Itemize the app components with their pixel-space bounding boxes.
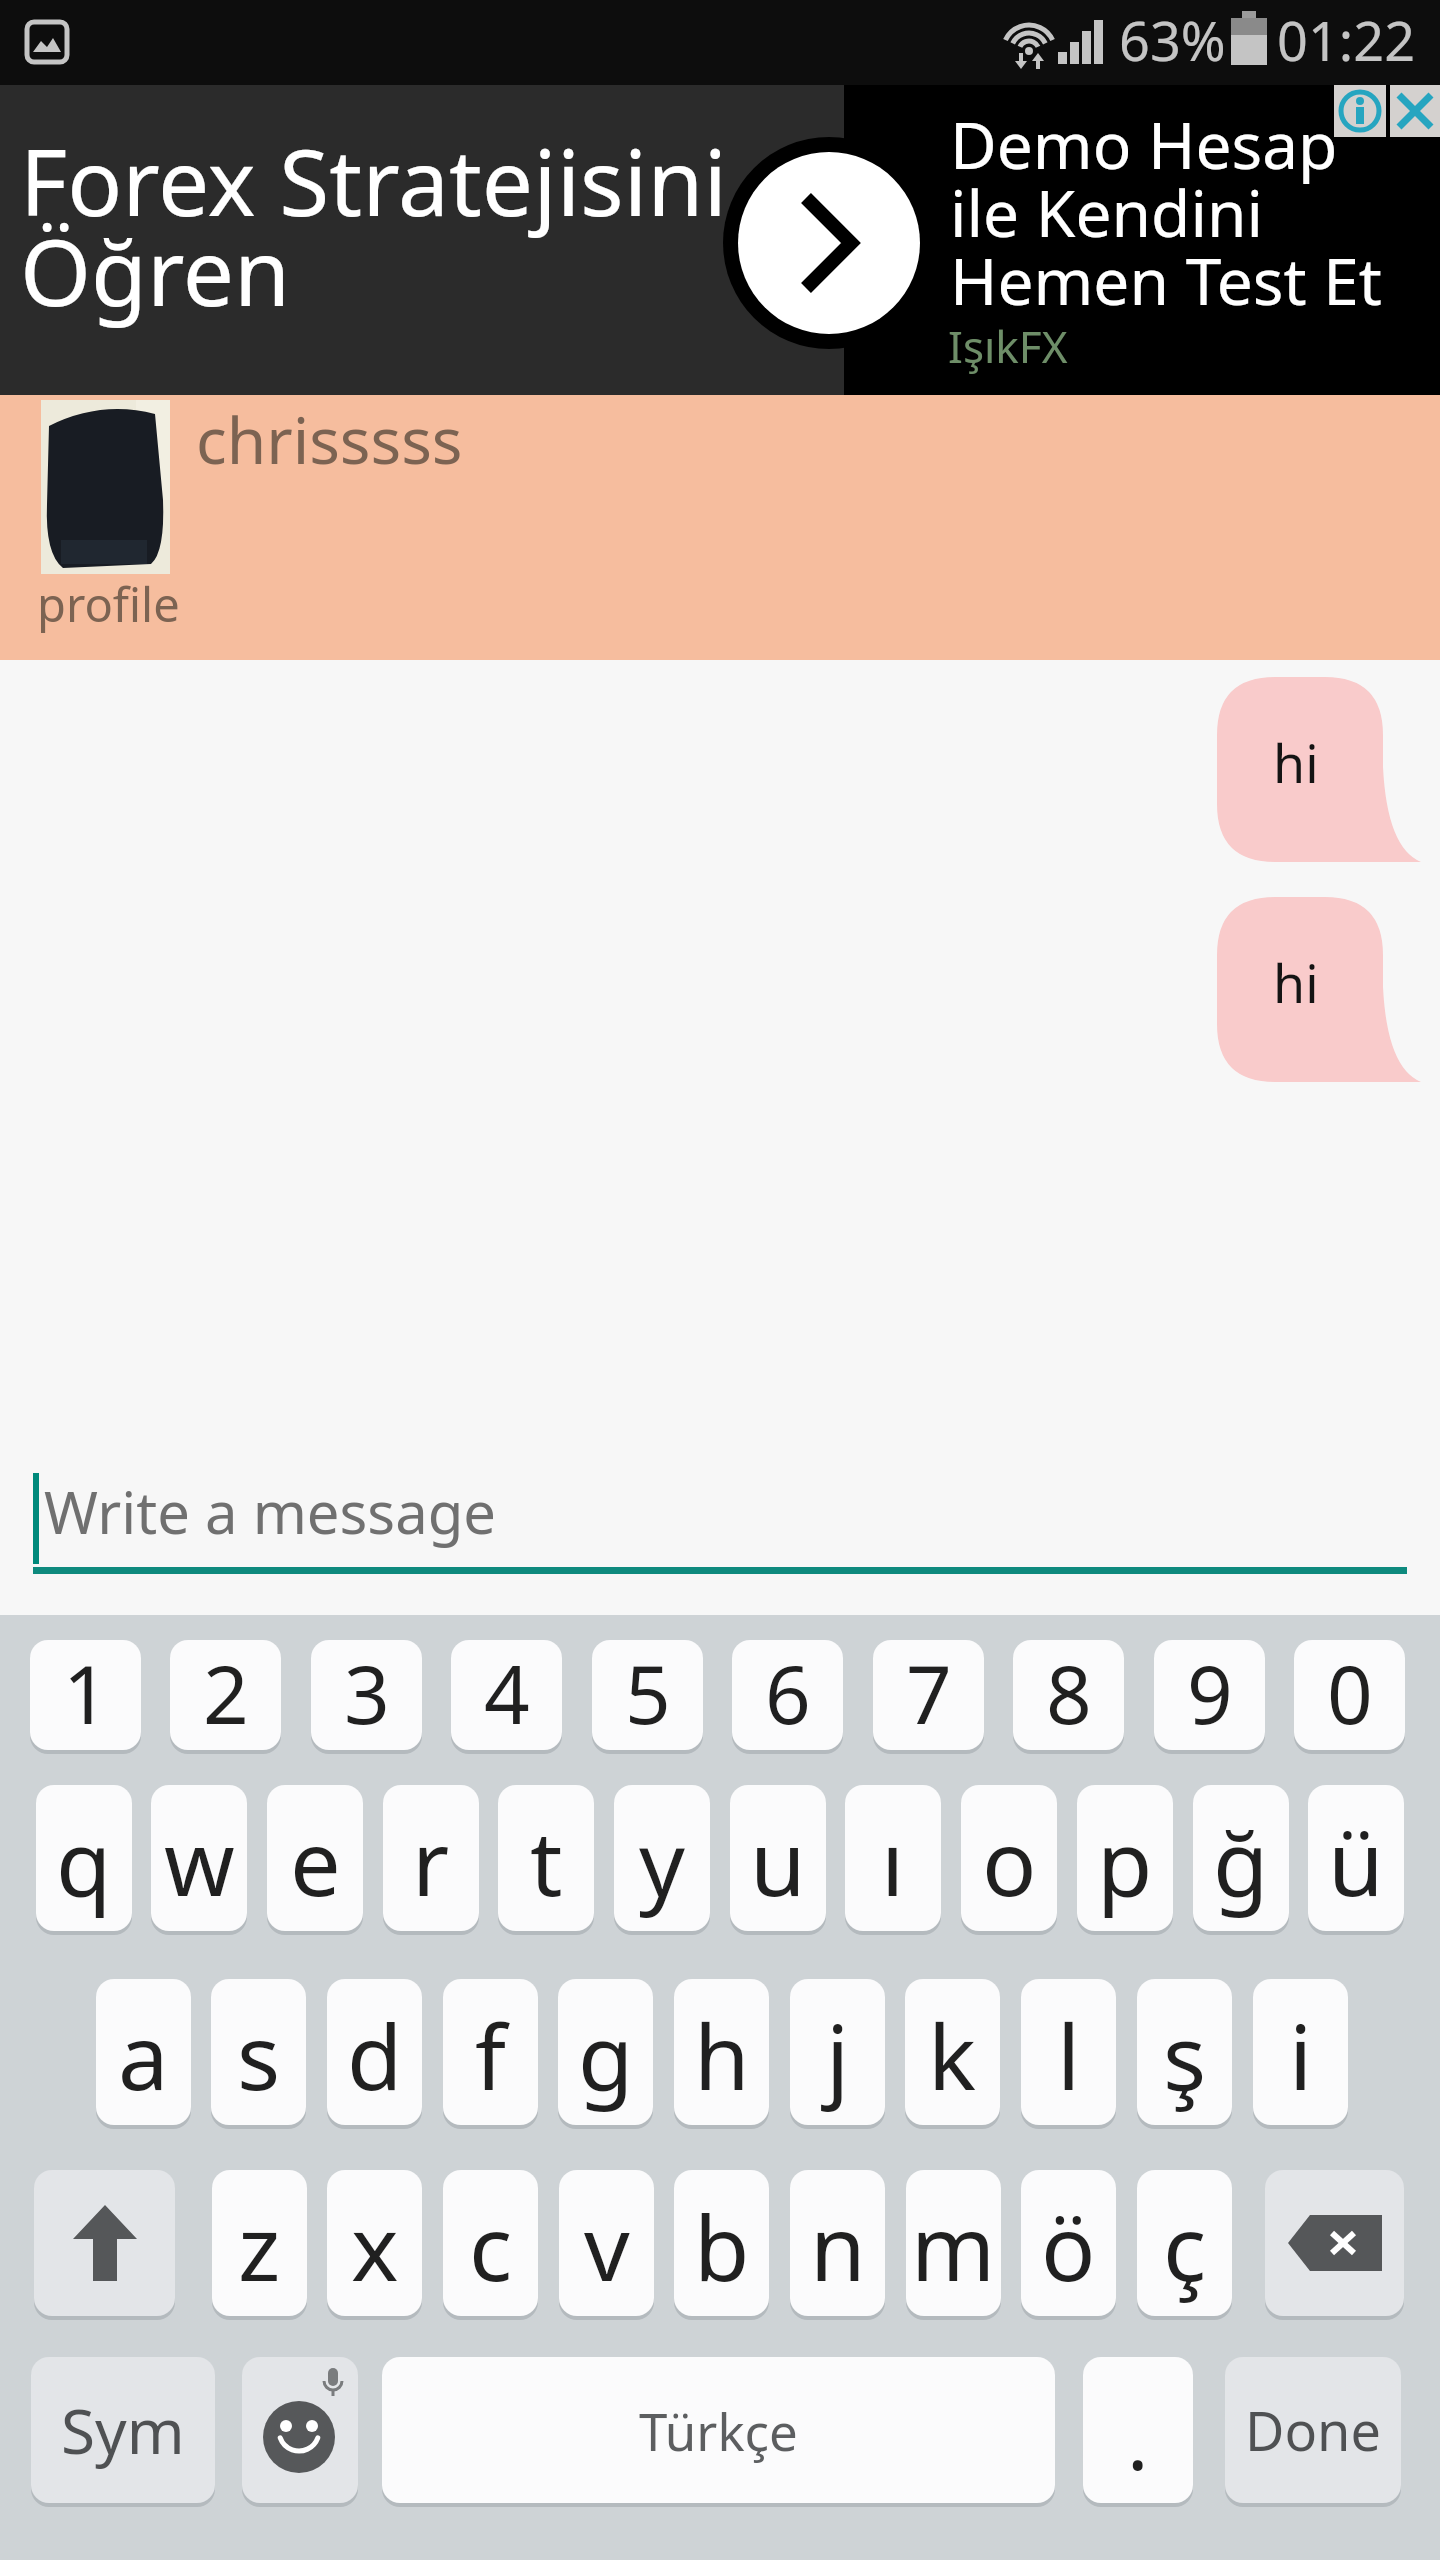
button[interactable]: ü: [1308, 1785, 1404, 1931]
staticText: b: [694, 2185, 750, 2308]
button[interactable]: h: [674, 1979, 769, 2125]
button[interactable]: e: [267, 1785, 363, 1931]
button[interactable]: t: [498, 1785, 594, 1931]
button[interactable]: b: [674, 2170, 769, 2316]
button[interactable]: 1: [30, 1640, 141, 1750]
staticText: h: [694, 1994, 750, 2117]
staticText: Türkçe: [639, 2396, 798, 2465]
button[interactable]: [1334, 85, 1386, 137]
staticText: 6: [765, 1640, 811, 1747]
button[interactable]: i: [1253, 1979, 1348, 2125]
staticText: v: [584, 2185, 630, 2308]
staticText: chrisssss: [196, 396, 463, 483]
button[interactable]: 5: [592, 1640, 703, 1750]
button[interactable]: [1390, 85, 1440, 137]
button[interactable]: 9: [1154, 1640, 1265, 1750]
button[interactable]: j: [790, 1979, 885, 2125]
staticText: ğ: [1213, 1800, 1269, 1923]
staticText: l: [1057, 1994, 1081, 2117]
staticText: profile: [37, 572, 180, 636]
button[interactable]: m: [906, 2170, 1001, 2316]
button[interactable]: [1265, 2170, 1404, 2316]
staticText: Write a message: [44, 1472, 497, 1551]
button[interactable]: 2: [170, 1640, 281, 1750]
button[interactable]: l: [1021, 1979, 1116, 2125]
staticText: e: [290, 1800, 341, 1923]
staticText: c: [469, 2185, 513, 2308]
button[interactable]: w: [151, 1785, 247, 1931]
staticText: g: [578, 1994, 634, 2117]
button[interactable]: 4: [451, 1640, 562, 1750]
staticText: q: [56, 1800, 112, 1923]
button[interactable]: a: [96, 1979, 191, 2125]
staticText: 2: [203, 1640, 249, 1747]
button[interactable]: [34, 2170, 175, 2316]
staticText: s: [237, 1994, 281, 2117]
staticText: z: [238, 2185, 281, 2308]
button[interactable]: v: [559, 2170, 654, 2316]
button[interactable]: [242, 2357, 358, 2503]
button[interactable]: q: [36, 1785, 132, 1931]
button[interactable]: .: [1083, 2357, 1193, 2503]
button[interactable]: ı: [845, 1785, 941, 1931]
staticText: ş: [1163, 1994, 1207, 2117]
button[interactable]: ğ: [1193, 1785, 1289, 1931]
button[interactable]: d: [327, 1979, 422, 2125]
staticText: r: [412, 1800, 450, 1923]
button[interactable]: 7: [873, 1640, 984, 1750]
staticText: Demo Hesap: [950, 101, 1338, 188]
staticText: 3: [344, 1640, 390, 1747]
button[interactable]: Türkçe: [382, 2357, 1055, 2503]
button[interactable]: [844, 85, 1440, 395]
button[interactable]: f: [443, 1979, 538, 2125]
staticText: ı: [881, 1800, 905, 1923]
staticText: w: [164, 1800, 235, 1923]
button[interactable]: s: [211, 1979, 306, 2125]
staticText: ö: [1041, 2185, 1096, 2308]
staticText: m: [911, 2185, 996, 2308]
staticText: u: [750, 1800, 806, 1923]
staticText: t: [530, 1800, 563, 1923]
staticText: ü: [1328, 1800, 1384, 1923]
staticText: x: [351, 2185, 399, 2308]
button[interactable]: u: [730, 1785, 826, 1931]
staticText: o: [982, 1800, 1037, 1923]
button[interactable]: [41, 400, 170, 574]
button[interactable]: x: [327, 2170, 422, 2316]
button[interactable]: ş: [1137, 1979, 1232, 2125]
button[interactable]: n: [790, 2170, 885, 2316]
button[interactable]: p: [1077, 1785, 1173, 1931]
staticText: i: [1289, 1994, 1313, 2117]
staticText: hi: [1273, 727, 1319, 798]
button[interactable]: 3: [311, 1640, 422, 1750]
button[interactable]: k: [905, 1979, 1000, 2125]
button[interactable]: y: [614, 1785, 710, 1931]
staticText: a: [118, 1994, 169, 2117]
staticText: 01:22: [1277, 3, 1416, 77]
staticText: 8: [1046, 1640, 1092, 1747]
button[interactable]: [0, 85, 844, 395]
button[interactable]: 6: [732, 1640, 843, 1750]
staticText: 63%: [1119, 3, 1226, 77]
button[interactable]: o: [961, 1785, 1057, 1931]
button[interactable]: c: [443, 2170, 538, 2316]
button[interactable]: Done: [1225, 2357, 1401, 2503]
button[interactable]: r: [383, 1785, 479, 1931]
button[interactable]: g: [558, 1979, 653, 2125]
button[interactable]: ç: [1137, 2170, 1232, 2316]
staticText: Hemen Test Et: [950, 237, 1382, 324]
staticText: 4: [484, 1640, 530, 1747]
staticText: p: [1097, 1800, 1153, 1923]
staticText: 5: [625, 1640, 671, 1747]
staticText: Öğren: [20, 209, 291, 333]
button[interactable]: ö: [1021, 2170, 1116, 2316]
staticText: y: [639, 1800, 685, 1923]
staticText: ç: [1163, 2185, 1207, 2308]
button[interactable]: 8: [1013, 1640, 1124, 1750]
staticText: 0: [1327, 1640, 1373, 1747]
button[interactable]: z: [212, 2170, 307, 2316]
button[interactable]: Sym: [31, 2357, 215, 2503]
staticText: Sym: [61, 2388, 185, 2472]
button[interactable]: 0: [1294, 1640, 1405, 1750]
staticText: 1: [63, 1640, 109, 1747]
